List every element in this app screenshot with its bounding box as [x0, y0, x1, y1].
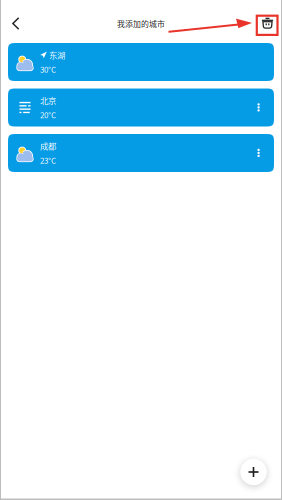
staticText: 北京: [40, 94, 56, 107]
button[interactable]: Delete cities: [256, 11, 278, 35]
button[interactable]: 北京: [8, 88, 274, 126]
staticText: 东湖: [49, 49, 65, 61]
staticText: 23°C: [40, 154, 56, 166]
button[interactable]: Add city: [238, 457, 268, 487]
button[interactable]: 东湖: [8, 43, 274, 81]
staticText: 我添加的城市: [117, 18, 165, 29]
button[interactable]: Back: [5, 11, 27, 35]
button[interactable]: 成都: [8, 134, 274, 172]
staticText: 20°C: [40, 109, 56, 121]
staticText: 成都: [40, 140, 56, 152]
staticText: 30°C: [40, 63, 56, 75]
